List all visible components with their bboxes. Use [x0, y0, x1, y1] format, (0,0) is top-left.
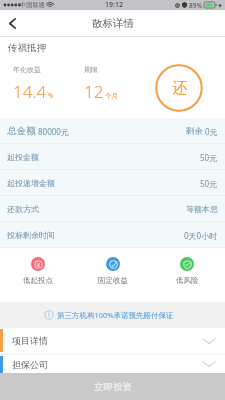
staticText: 0天0小时 — [184, 230, 218, 241]
staticText: % — [48, 91, 54, 100]
staticText: 50元 — [200, 178, 218, 189]
staticText: 50元 — [200, 152, 218, 163]
button[interactable]: Back — [0, 10, 25, 36]
staticText: 80000元 — [38, 126, 69, 137]
staticText: 还款方式 — [7, 204, 39, 214]
staticText: 0元 — [205, 126, 218, 137]
button[interactable]: 还 — [155, 64, 203, 112]
staticText: 剩余 — [186, 126, 203, 137]
staticText: 项目详情 — [12, 335, 48, 346]
staticText: 担保公司 — [12, 359, 48, 370]
staticText: 12 — [84, 80, 104, 103]
staticText: 第三方机构100%承诺预先赔付保证 — [57, 310, 174, 320]
staticText: 传祺抵押 — [8, 42, 46, 54]
button[interactable]: 低起投点 — [1, 248, 75, 302]
staticText: 个月 — [105, 92, 118, 100]
staticText: 投标剩余时间 — [7, 230, 55, 240]
staticText: 固定收益 — [98, 276, 128, 285]
staticText: 立即投资 — [94, 381, 132, 393]
staticText: 14.4 — [13, 80, 47, 103]
staticText: 等额本息 — [186, 204, 218, 214]
staticText: 89% — [189, 1, 202, 10]
staticText: 总金额 — [7, 125, 36, 137]
staticText: 起投金额 — [7, 152, 39, 162]
staticText: 低风险 — [176, 276, 199, 285]
staticText: 期限 — [84, 65, 98, 74]
staticText: 年化收益 — [13, 65, 41, 74]
button[interactable]: 低风险 — [150, 248, 224, 302]
staticText: 19:12 — [105, 0, 123, 10]
staticText: 起投递增金额 — [7, 178, 55, 188]
button[interactable]: 担保公司 — [0, 355, 225, 373]
button[interactable]: 立即投资 — [0, 373, 225, 400]
button[interactable]: 固定收益 — [76, 248, 150, 302]
staticText: 散标详情 — [92, 17, 134, 30]
button[interactable]: 项目详情 — [0, 328, 225, 353]
staticText: 中国联通 — [20, 1, 45, 9]
staticText: 还 — [172, 79, 187, 98]
staticText: 低起投点 — [23, 276, 53, 285]
